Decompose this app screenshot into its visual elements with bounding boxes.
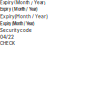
staticText: Security code bbox=[0, 28, 32, 33]
staticText: Expiry (Month / Year) bbox=[0, 0, 46, 5]
staticText: Expiry (Month / Year) bbox=[0, 13, 47, 19]
staticText: CHECK bbox=[0, 41, 15, 46]
staticText: 04/22 bbox=[0, 34, 14, 40]
staticText: Expiry (Month / Year) bbox=[0, 6, 38, 12]
staticText: Expiry (Month / Year) bbox=[0, 20, 34, 27]
